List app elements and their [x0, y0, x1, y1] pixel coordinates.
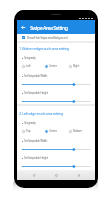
staticText: Center [49, 129, 57, 133]
button[interactable]: Bottom [69, 129, 93, 133]
staticText: Set Swipeable Height [24, 91, 48, 95]
button[interactable]: Center [45, 64, 69, 68]
staticText: Bottom [73, 129, 82, 133]
staticText: Set Swipeable Width [24, 139, 48, 143]
button[interactable]: Back [29, 170, 39, 180]
button[interactable]: Recents [73, 170, 83, 180]
button[interactable]: Center [45, 129, 69, 133]
staticText: Right [73, 64, 79, 68]
button[interactable]: Right [69, 64, 93, 68]
staticText: Top [26, 129, 31, 133]
staticText: Set gravity [24, 121, 36, 125]
staticText: 2. Left edge touch area setting [19, 111, 63, 116]
staticText: Center [49, 64, 57, 68]
button[interactable]: Top [22, 129, 45, 133]
staticText: Swipe Area Setting [30, 24, 68, 31]
button[interactable]: Back [17, 20, 30, 34]
button[interactable] [19, 100, 93, 103]
staticText: 1. Bottom edge touch area setting [19, 46, 69, 51]
button[interactable] [19, 165, 93, 168]
staticText: Show/Hide Swipe area Background [27, 36, 68, 40]
button[interactable] [19, 148, 93, 151]
button[interactable]: Show/Hide Swipe area Background [17, 34, 95, 41]
button[interactable]: Home [51, 170, 61, 180]
staticText: Set gravity [24, 56, 36, 60]
button[interactable] [19, 83, 93, 86]
staticText: Set Swipeable Height [24, 156, 48, 160]
staticText: Set Swipeable Width [24, 74, 48, 78]
button[interactable]: Left [22, 64, 45, 68]
staticText: Left [26, 64, 31, 68]
